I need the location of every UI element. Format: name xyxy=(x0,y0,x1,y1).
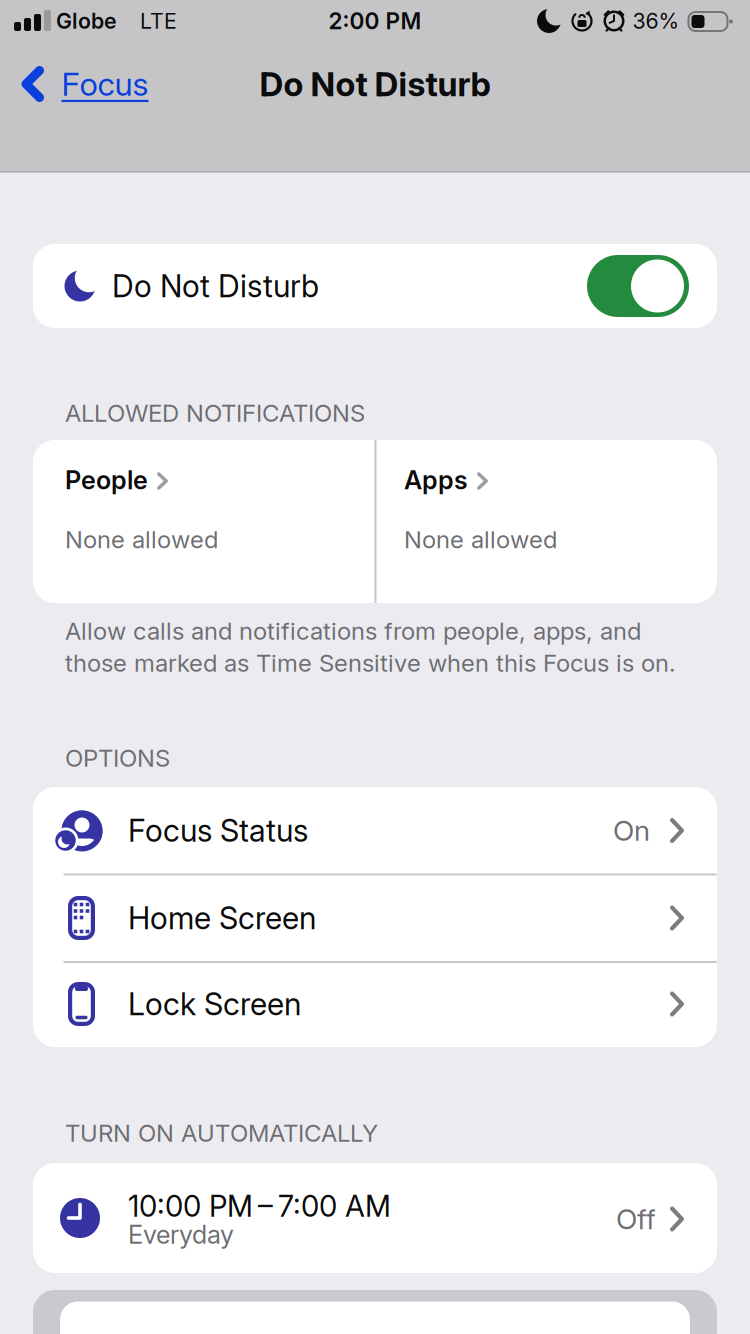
staticText: Focus xyxy=(61,65,148,103)
staticText: None allowed xyxy=(65,525,218,554)
button[interactable]: Apps xyxy=(375,440,716,603)
staticText: Lock Screen xyxy=(128,986,301,1022)
staticText: Home Screen xyxy=(128,900,316,936)
button[interactable]: Back to Focus xyxy=(21,65,148,103)
staticText: those marked as Time Sensitive when this… xyxy=(65,649,676,677)
staticText: 10:00 PM – 7:00 AM xyxy=(128,1189,391,1223)
staticText: Focus Status xyxy=(128,812,308,849)
staticText: ALLOWED NOTIFICATIONS xyxy=(65,399,365,427)
button[interactable]: 10:00 PM – 7:00 AM xyxy=(33,1163,717,1273)
button[interactable]: Focus Status xyxy=(33,787,717,873)
button[interactable]: Focus preview xyxy=(33,1290,717,1334)
button[interactable]: Do Not Disturb on xyxy=(587,255,689,317)
staticText: LTE xyxy=(140,8,177,34)
staticText: 36% xyxy=(632,8,679,34)
staticText: TURN ON AUTOMATICALLY xyxy=(65,1119,378,1147)
staticText: Do Not Disturb xyxy=(112,268,319,304)
staticText: People xyxy=(65,465,148,495)
staticText: Off xyxy=(616,1202,656,1235)
staticText: OPTIONS xyxy=(65,744,170,772)
staticText: Allow calls and notifications from peopl… xyxy=(65,617,641,645)
button[interactable]: People xyxy=(33,440,374,603)
button[interactable]: Home Screen xyxy=(33,874,717,962)
staticText: Do Not Disturb xyxy=(259,64,490,104)
staticText: Everyday xyxy=(128,1220,234,1249)
staticText: Globe xyxy=(56,8,117,34)
staticText: None allowed xyxy=(404,525,557,554)
button[interactable]: Lock Screen xyxy=(33,962,717,1047)
staticText: On xyxy=(613,814,650,847)
staticText: Apps xyxy=(404,465,468,495)
staticText: 2:00 PM xyxy=(328,8,421,34)
